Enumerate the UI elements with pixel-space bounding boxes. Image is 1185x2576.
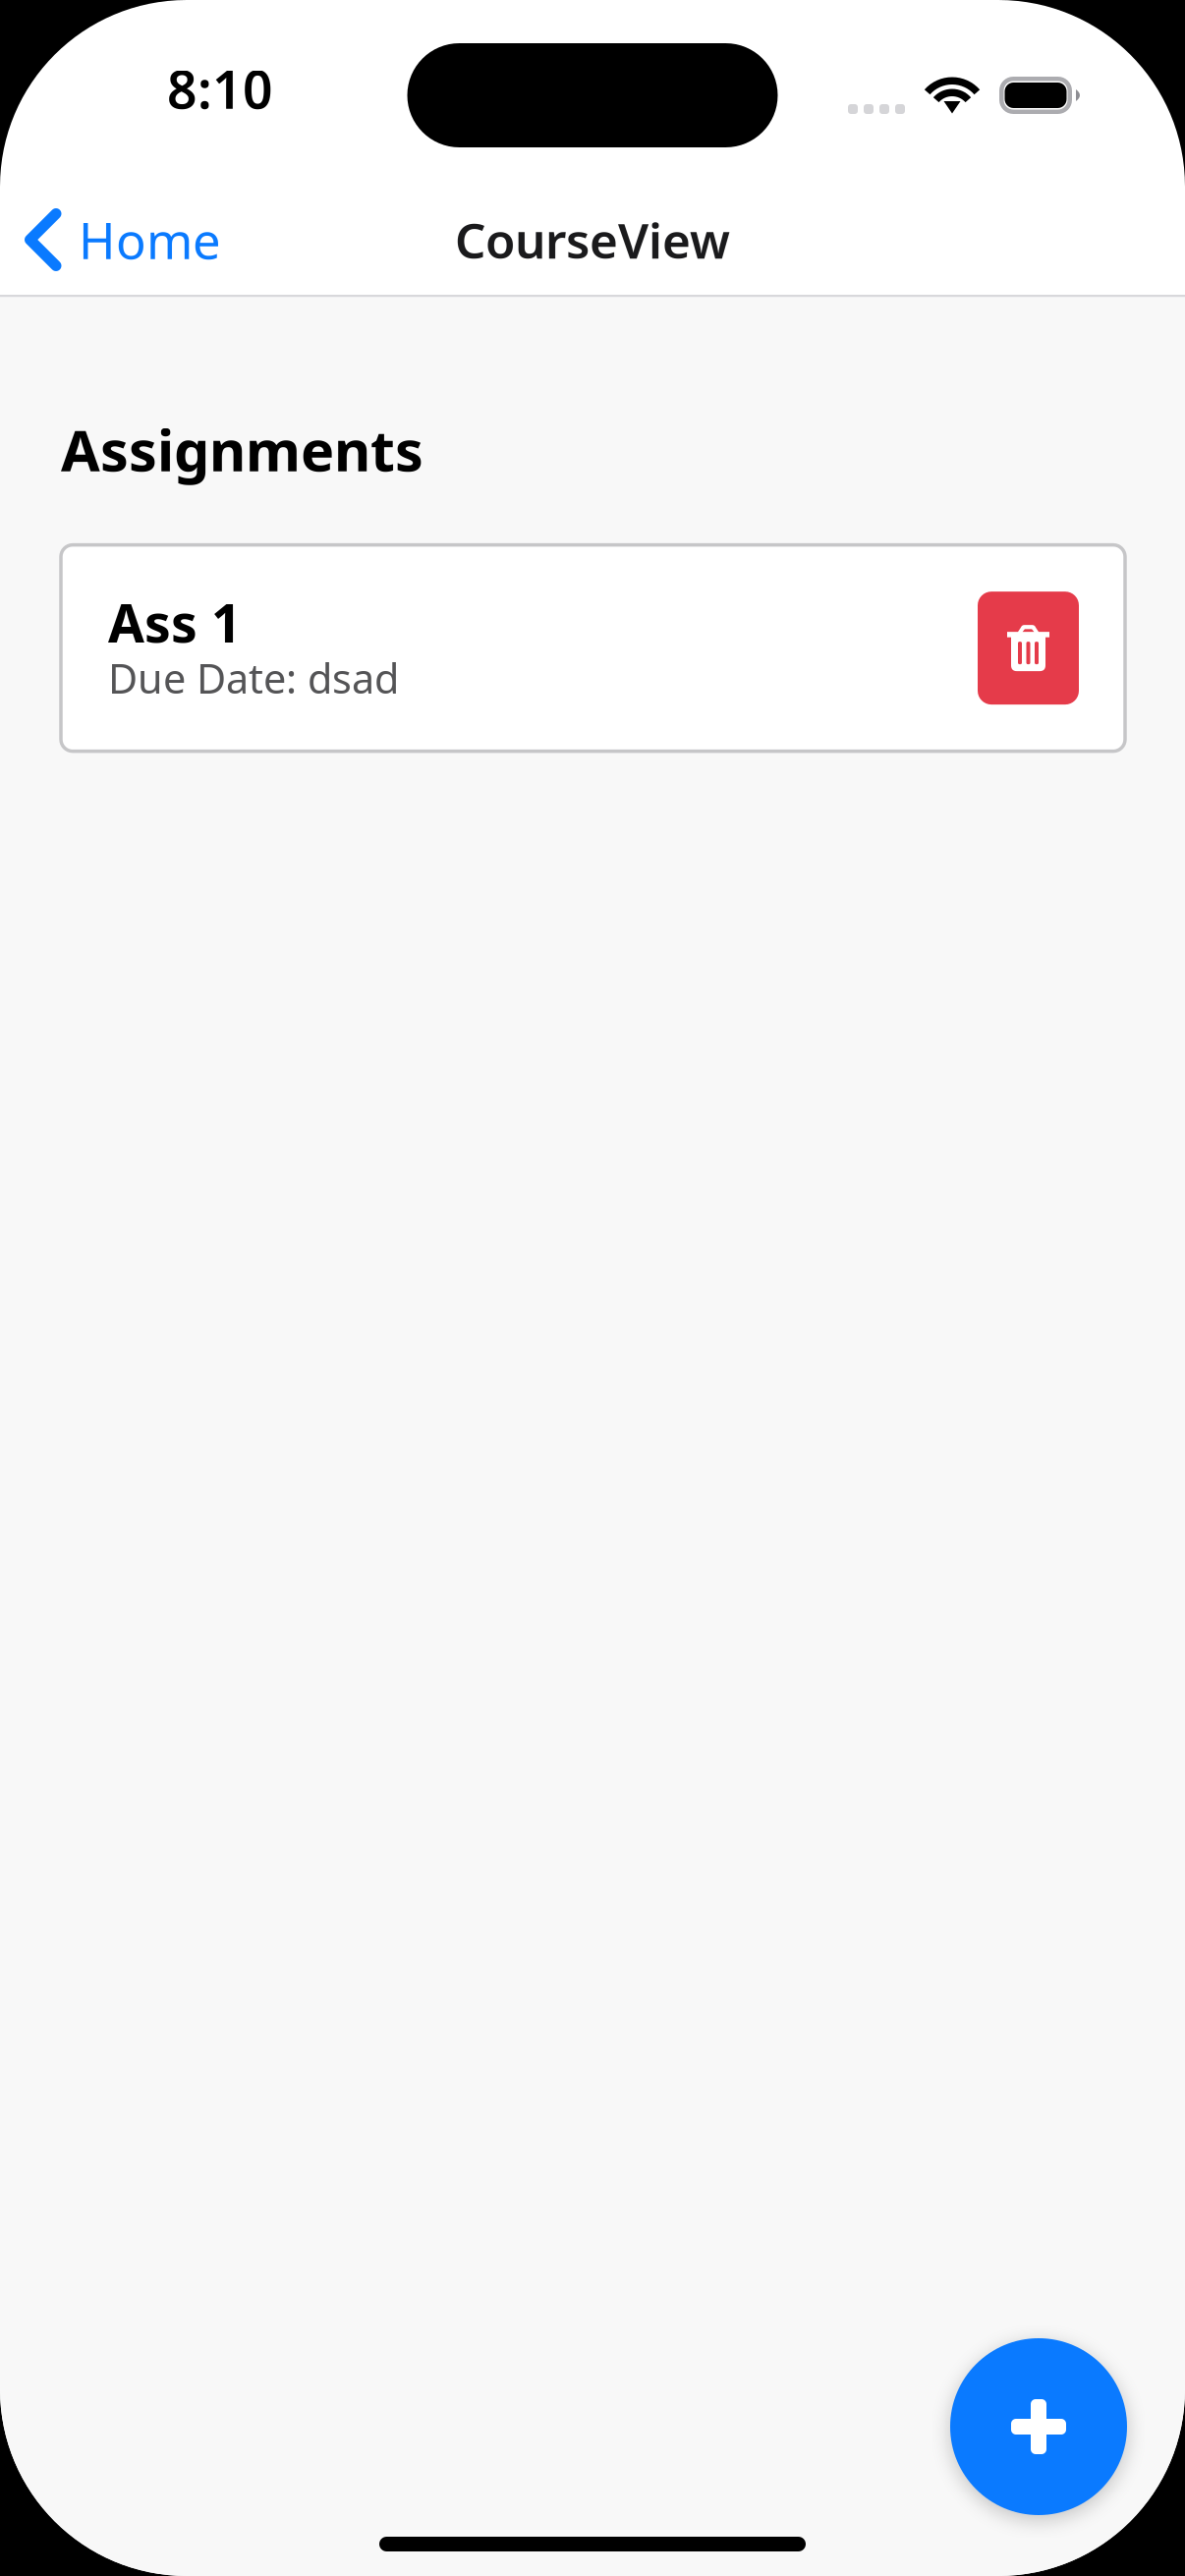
button[interactable]: Delete assignment bbox=[978, 592, 1079, 705]
staticText: 8:10 bbox=[167, 54, 273, 123]
staticText: CourseView bbox=[455, 207, 730, 272]
staticText: Ass 1 bbox=[108, 587, 242, 657]
button[interactable]: Add assignment bbox=[950, 2338, 1127, 2515]
staticText: Assignments bbox=[61, 412, 423, 487]
staticText: Due Date: dsad bbox=[108, 651, 399, 705]
button[interactable]: Home bbox=[0, 181, 245, 299]
staticText: Home bbox=[79, 207, 221, 273]
